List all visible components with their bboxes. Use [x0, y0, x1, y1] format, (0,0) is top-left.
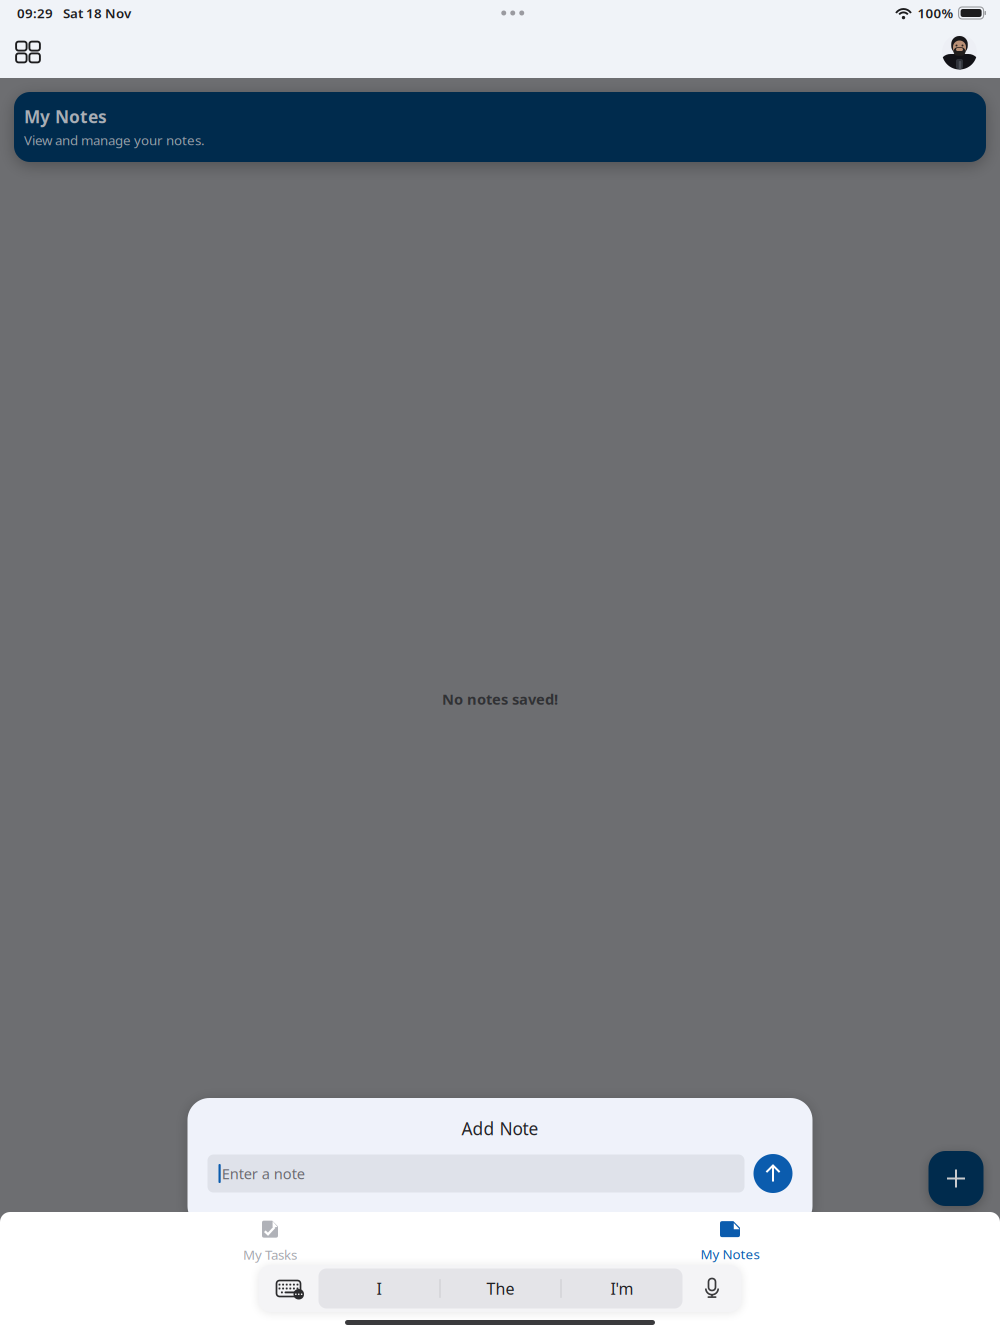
staticText: No notes saved!	[442, 689, 558, 709]
button[interactable]: Add note	[928, 1151, 983, 1206]
staticText: The	[486, 1278, 514, 1299]
button[interactable]: My Notes	[650, 1218, 810, 1266]
button[interactable]: Keyboard options	[258, 1268, 318, 1308]
staticText: View and manage your notes.	[24, 131, 205, 149]
staticText: Add Note	[461, 1117, 538, 1140]
staticText: 09:29	[17, 4, 53, 22]
staticText: My Notes	[24, 105, 107, 128]
staticText: Sat 18 Nov	[63, 4, 131, 22]
button[interactable]: Submit note	[753, 1154, 792, 1193]
staticText: Enter a note	[222, 1164, 305, 1183]
button[interactable]: My Tasks	[190, 1218, 350, 1266]
staticText: My Notes	[700, 1245, 759, 1263]
button[interactable]: Grid view	[10, 35, 46, 68]
staticText: I'm	[610, 1278, 633, 1299]
staticText: 100%	[917, 4, 953, 22]
button[interactable]: Dictate	[682, 1268, 741, 1308]
staticText: I	[376, 1278, 381, 1299]
staticText: My Tasks	[243, 1246, 297, 1263]
button[interactable]: Profile	[942, 34, 977, 69]
